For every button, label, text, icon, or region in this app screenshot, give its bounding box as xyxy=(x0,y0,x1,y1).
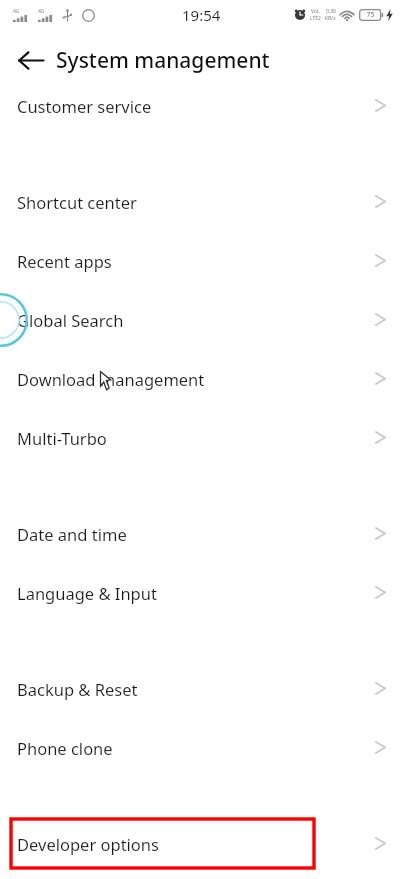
button[interactable]: Download management xyxy=(0,349,402,408)
button[interactable]: Customer service xyxy=(0,76,402,135)
staticText: 75 xyxy=(366,10,375,20)
staticText: Date and time xyxy=(17,523,127,545)
staticText: Language & Input xyxy=(17,582,157,604)
staticText: Recent apps xyxy=(17,250,112,272)
staticText: Backup & Reset xyxy=(17,678,138,700)
button[interactable]: Global Search xyxy=(0,290,402,349)
staticText: 4G xyxy=(38,8,45,15)
staticText: LTE2 xyxy=(310,15,321,22)
button[interactable]: Recent apps xyxy=(0,231,402,290)
button[interactable]: Date and time xyxy=(0,504,402,563)
staticText: 0.30 xyxy=(326,8,336,15)
staticText: 19:54 xyxy=(182,5,221,25)
staticText: Download management xyxy=(17,368,205,390)
staticText: Customer service xyxy=(17,95,152,117)
staticText: Global Search xyxy=(17,309,124,331)
staticText: Phone clone xyxy=(17,737,113,759)
button[interactable]: Shortcut center xyxy=(0,172,402,231)
button[interactable]: Language & Input xyxy=(0,563,402,622)
staticText: Developer options xyxy=(17,833,159,855)
staticText: Multi-Turbo xyxy=(17,427,107,449)
staticText: 4G xyxy=(13,8,20,15)
button[interactable]: Backup & Reset xyxy=(0,659,402,718)
staticText: System management xyxy=(56,46,270,75)
staticText: Shortcut center xyxy=(17,191,137,213)
button[interactable]: Phone clone xyxy=(0,718,402,777)
button[interactable]: Developer options xyxy=(0,814,402,873)
button[interactable]: Multi-Turbo xyxy=(0,408,402,467)
staticText: KB/s xyxy=(325,15,336,22)
staticText: VoL xyxy=(311,8,320,15)
other: Assistant ball xyxy=(0,292,20,348)
button[interactable]: Back xyxy=(9,38,53,82)
